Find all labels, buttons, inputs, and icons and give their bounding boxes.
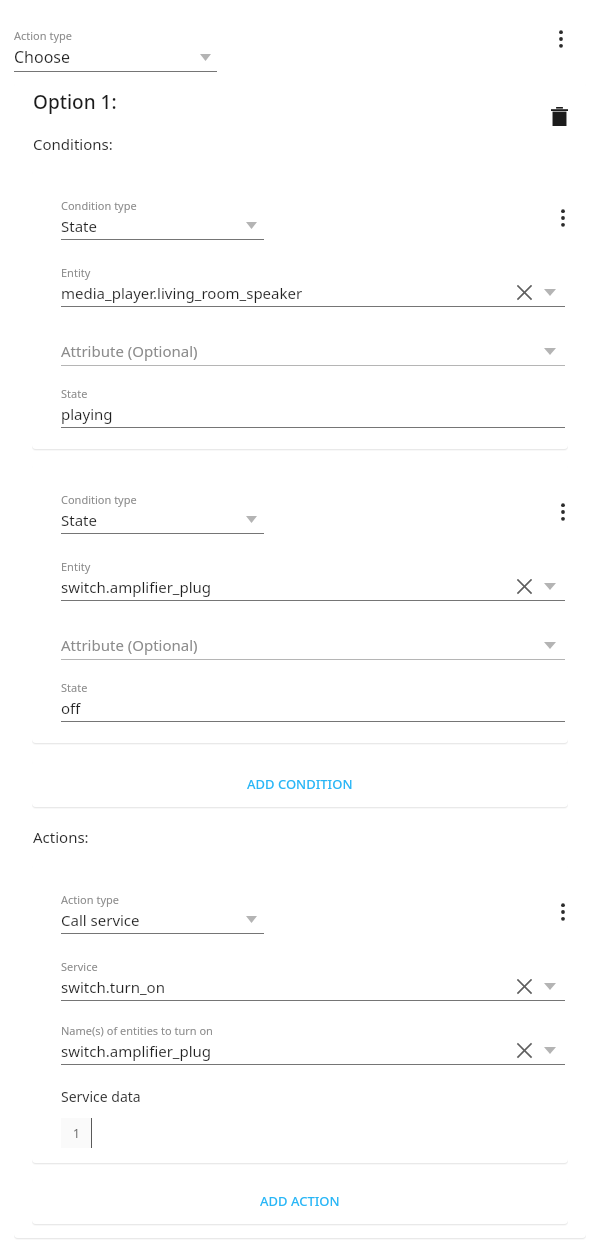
- staticText: playing: [61, 404, 113, 424]
- button[interactable]: Entity: [61, 265, 565, 307]
- staticText: Attribute (Optional): [61, 341, 198, 361]
- button[interactable]: More options: [551, 206, 568, 230]
- staticText: Actions:: [33, 827, 89, 847]
- button[interactable]: Choose: [14, 46, 217, 68]
- staticText: Action type: [14, 28, 72, 43]
- staticText: Option 1:: [33, 89, 117, 115]
- button[interactable]: Condition type: [61, 492, 264, 534]
- staticText: switch.amplifier_plug: [61, 577, 212, 597]
- staticText: State: [61, 216, 97, 236]
- staticText: Condition type: [61, 198, 137, 213]
- staticText: 1: [73, 1125, 80, 1141]
- staticText: ADD CONDITION: [247, 775, 353, 793]
- button[interactable]: State: [61, 386, 565, 428]
- button[interactable]: Action type: [61, 892, 264, 934]
- button[interactable]: ADD CONDITION: [32, 760, 568, 807]
- button[interactable]: Condition type: [61, 198, 264, 240]
- button[interactable]: State: [61, 680, 565, 722]
- staticText: switch.amplifier_plug: [61, 1041, 212, 1061]
- staticText: Condition type: [61, 492, 137, 507]
- staticText: off: [61, 698, 81, 718]
- staticText: Service: [61, 959, 98, 974]
- button[interactable]: ADD ACTION: [32, 1177, 568, 1224]
- staticText: ADD ACTION: [260, 1192, 340, 1210]
- button[interactable]: More options: [551, 500, 568, 524]
- staticText: Service data: [61, 1087, 141, 1106]
- staticText: media_player.living_room_speaker: [61, 283, 303, 303]
- staticText: Action type: [61, 892, 119, 907]
- staticText: Conditions:: [33, 134, 113, 154]
- button[interactable]: Attribute (Optional): [61, 634, 565, 660]
- button[interactable]: Entity: [61, 559, 565, 601]
- button[interactable]: Service: [61, 959, 565, 1001]
- staticText: Entity: [61, 559, 91, 574]
- staticText: Name(s) of entities to turn on: [61, 1023, 213, 1038]
- staticText: Attribute (Optional): [61, 635, 198, 655]
- button[interactable]: Name(s) of entities to turn on: [61, 1023, 565, 1065]
- staticText: Choose: [14, 46, 71, 68]
- staticText: Call service: [61, 910, 140, 930]
- staticText: Entity: [61, 265, 91, 280]
- button[interactable]: Attribute (Optional): [61, 340, 565, 366]
- button[interactable]: More options: [549, 27, 573, 51]
- staticText: State: [61, 510, 97, 530]
- staticText: State: [61, 386, 88, 401]
- staticText: State: [61, 680, 88, 695]
- staticText: switch.turn_on: [61, 977, 165, 997]
- button[interactable]: More options: [551, 900, 568, 924]
- button[interactable]: Delete option: [545, 103, 573, 131]
